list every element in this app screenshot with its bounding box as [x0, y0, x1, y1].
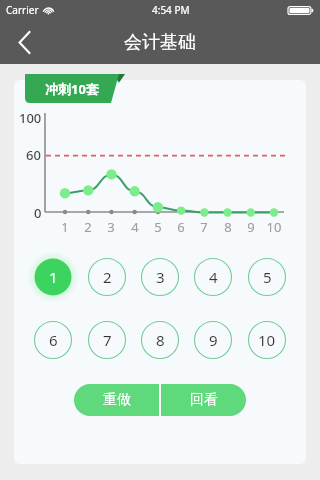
staticText: 9 [209, 330, 218, 350]
staticText: 1 [53, 218, 77, 236]
staticText: 会计基础 [124, 31, 196, 54]
button[interactable]: 10 [243, 316, 291, 364]
staticText: 100 [19, 109, 42, 127]
staticText: 60 [26, 146, 41, 164]
staticText: 3 [156, 267, 165, 287]
staticText: 8 [216, 218, 240, 236]
staticText: 2 [103, 267, 112, 287]
staticText: 1 [49, 267, 58, 287]
staticText: 回看 [190, 391, 218, 409]
staticText: 3 [99, 218, 123, 236]
staticText: 10 [258, 330, 276, 350]
staticText: 冲刺10套 [45, 80, 99, 98]
staticText: 0 [34, 204, 42, 222]
button[interactable]: 4 [189, 253, 237, 301]
staticText: 6 [49, 330, 58, 350]
button[interactable]: 8 [136, 316, 184, 364]
staticText: 10 [262, 218, 286, 236]
staticText: 4 [209, 267, 218, 287]
staticText: Carrier [6, 3, 39, 17]
staticText: 7 [103, 330, 112, 350]
button[interactable]: 重做 [74, 384, 159, 416]
staticText: 5 [263, 267, 272, 287]
staticText: 4:54 PM [152, 3, 190, 17]
button[interactable]: Back [0, 20, 48, 64]
button[interactable]: 6 [29, 316, 77, 364]
button[interactable]: 1 [29, 253, 77, 301]
staticText: 7 [192, 218, 216, 236]
staticText: 重做 [103, 391, 131, 409]
staticText: 6 [169, 218, 193, 236]
button[interactable]: 回看 [161, 384, 246, 416]
staticText: 8 [156, 330, 165, 350]
staticText: 9 [239, 218, 263, 236]
button[interactable]: 7 [83, 316, 131, 364]
staticText: 4 [123, 218, 147, 236]
button[interactable]: 9 [189, 316, 237, 364]
staticText: 5 [146, 218, 170, 236]
button[interactable]: 5 [243, 253, 291, 301]
staticText: 2 [76, 218, 100, 236]
button[interactable]: 2 [83, 253, 131, 301]
button[interactable]: 3 [136, 253, 184, 301]
